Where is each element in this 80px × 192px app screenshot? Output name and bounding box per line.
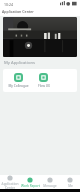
staticText: Message	[43, 184, 57, 188]
staticText: Flow UX	[38, 84, 50, 88]
staticText: Application Center	[0, 182, 20, 189]
button[interactable]: Application Center	[0, 175, 20, 189]
button[interactable]	[3, 17, 77, 57]
staticText: Application Center	[2, 9, 34, 14]
button[interactable]: Work Report	[20, 177, 40, 188]
button[interactable]: My Colleague	[8, 73, 29, 88]
staticText: Work Report	[21, 184, 40, 188]
button[interactable]: Message	[40, 177, 60, 188]
button[interactable]: Flow UX	[33, 73, 54, 88]
button[interactable]: Me	[60, 177, 80, 188]
staticText: Me	[68, 184, 73, 188]
staticText: My Colleague	[8, 84, 29, 88]
staticText: My Applications	[4, 60, 36, 66]
staticText: 10:24	[4, 2, 13, 7]
